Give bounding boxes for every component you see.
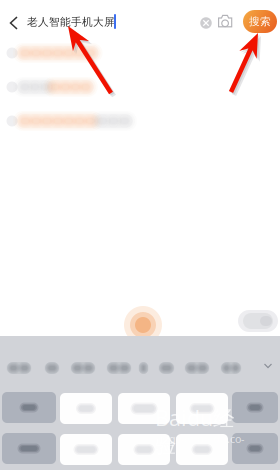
button[interactable]: More candidates (261, 360, 275, 372)
button[interactable]: Search by image (217, 14, 235, 30)
button[interactable]: Search suggestion (0, 36, 280, 70)
staticText: Baidu经验 (155, 404, 234, 458)
button[interactable]: 换行 (232, 433, 278, 464)
button[interactable]: Back (2, 11, 26, 35)
button[interactable]: GHI (176, 393, 228, 424)
button[interactable]: 符号 (2, 433, 56, 464)
button[interactable]: JKL (60, 434, 112, 465)
button[interactable]: MNO (118, 434, 170, 465)
button[interactable]: Search suggestion (0, 104, 280, 138)
button[interactable]: Search suggestion (0, 70, 280, 104)
button[interactable]: 搜索 (243, 10, 277, 33)
staticText: jingyan.baidu.com (156, 432, 244, 460)
staticText: 搜索 (249, 15, 271, 28)
staticText: 老人智能手机大屏 (27, 15, 115, 28)
button[interactable]: ABC (60, 393, 112, 424)
button[interactable]: Candidate word (44, 359, 60, 377)
button[interactable]: 分词 (2, 392, 56, 423)
button[interactable]: Candidate word (184, 359, 210, 377)
button[interactable]: Candidate word (6, 359, 32, 377)
button[interactable]: Candidate word (70, 359, 96, 377)
button[interactable]: Candidate word (106, 359, 132, 377)
button[interactable]: 删除 (232, 392, 278, 423)
button[interactable]: Candidate word (138, 359, 149, 377)
button[interactable]: DEF (118, 393, 170, 424)
button[interactable]: Clear text (197, 14, 215, 32)
button[interactable]: Candidate word (220, 359, 242, 377)
button[interactable]: PQRS (176, 434, 228, 465)
button[interactable]: Candidate word (158, 359, 175, 377)
